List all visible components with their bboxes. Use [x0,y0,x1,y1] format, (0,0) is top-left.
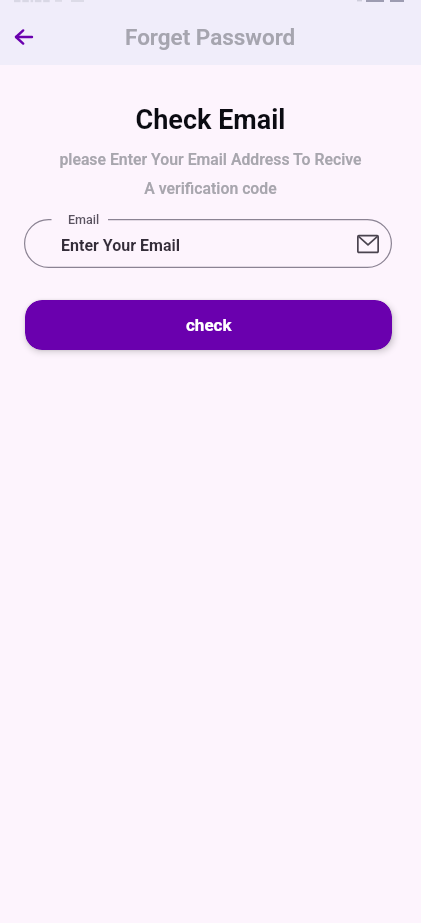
staticText: Forget Password [125,24,296,50]
staticText: please Enter Your Email Address To Reciv… [0,150,421,169]
button[interactable]: Back [4,17,44,57]
button[interactable]: Email [24,212,392,268]
staticText: A verification code [0,179,421,198]
staticText: Check Email [0,104,421,136]
button[interactable]: check [25,300,392,350]
staticText: check [186,315,232,335]
button[interactable]: Email [355,231,381,257]
staticText: Email [68,212,100,227]
staticText: Enter Your Email [61,236,180,255]
